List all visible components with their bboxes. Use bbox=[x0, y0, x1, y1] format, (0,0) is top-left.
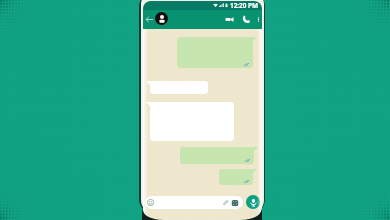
button[interactable]: More options bbox=[255, 16, 262, 23]
button[interactable]: Back bbox=[145, 15, 154, 24]
button[interactable] bbox=[145, 196, 243, 209]
button[interactable]: Contact profile bbox=[155, 12, 168, 25]
staticText: 12:20 PM bbox=[230, 1, 259, 10]
button[interactable]: Voice call bbox=[242, 15, 250, 23]
button[interactable]: Record voice message bbox=[246, 195, 260, 209]
button[interactable]: Video call bbox=[225, 15, 234, 24]
